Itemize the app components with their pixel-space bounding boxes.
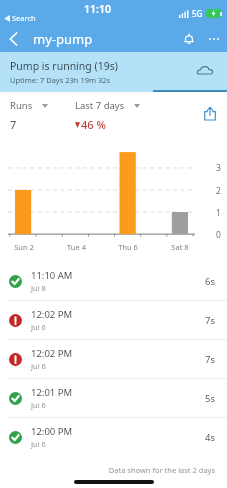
staticText: Search [12, 13, 36, 23]
staticText: Jul 6 [31, 322, 46, 332]
button[interactable]: Share [199, 102, 221, 124]
staticText: 5G [192, 8, 203, 19]
staticText: Thu 6 [118, 242, 138, 252]
staticText: Jul 8 [31, 283, 46, 293]
button[interactable]: More options [201, 26, 227, 52]
staticText: Last 7 days [75, 99, 125, 112]
staticText: my-pump [33, 30, 93, 48]
button[interactable]: 12:01 PM [0, 379, 227, 417]
staticText: 4s [205, 431, 215, 444]
staticText: Data shown for the last 2 days [0, 465, 215, 475]
staticText: 12:02 PM [31, 347, 73, 360]
staticText: 7 [10, 117, 17, 132]
button[interactable]: Runs [10, 99, 50, 112]
staticText: Jul 6 [31, 361, 46, 371]
button[interactable]: Pump is running (19s) [0, 52, 227, 92]
button[interactable]: 11:10 AM [0, 262, 227, 300]
button[interactable]: Back [0, 26, 26, 52]
staticText: 12:01 PM [31, 386, 73, 399]
staticText: Uptime: 7 Days 23h 19m 32s [10, 75, 111, 85]
staticText: 11:10 AM [31, 269, 73, 282]
staticText: Jul 6 [31, 400, 46, 410]
staticText: Pump is running (19s) [10, 59, 118, 73]
button[interactable]: Notifications [177, 27, 201, 51]
staticText: 7s [205, 314, 215, 327]
staticText: 1 [216, 207, 221, 219]
button[interactable]: Last 7 days [75, 99, 142, 112]
staticText: 0 [216, 229, 221, 241]
staticText: Jul 6 [31, 439, 46, 449]
staticText: Runs [10, 99, 33, 112]
staticText: Sun 2 [14, 242, 34, 252]
staticText: Tue 4 [67, 242, 86, 252]
staticText: 6s [205, 275, 215, 288]
staticText: 3 [216, 162, 221, 174]
button[interactable]: 12:02 PM [0, 301, 227, 339]
button[interactable]: 12:00 PM [0, 418, 227, 456]
button[interactable]: 12:02 PM [0, 340, 227, 378]
staticText: 2 [216, 185, 221, 197]
staticText: 46 % [81, 117, 106, 132]
staticText: 12:00 PM [31, 425, 73, 438]
staticText: Sat 8 [171, 242, 189, 252]
staticText: 5s [205, 392, 215, 405]
staticText: 12:02 PM [31, 308, 73, 321]
staticText: 7s [205, 353, 215, 366]
staticText: 11:10 [84, 2, 111, 16]
